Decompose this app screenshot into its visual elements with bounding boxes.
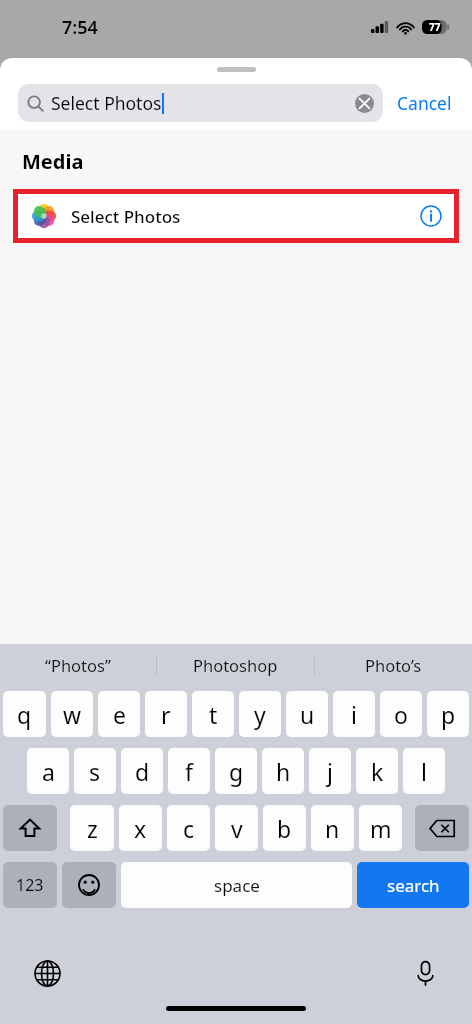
button[interactable]: n xyxy=(311,805,354,851)
staticText: b xyxy=(277,813,292,844)
staticText: c xyxy=(183,813,195,844)
button[interactable]: Clear text xyxy=(355,94,374,113)
button[interactable]: k xyxy=(356,748,398,794)
button[interactable]: Backspace xyxy=(415,805,469,851)
button[interactable]: g xyxy=(215,748,257,794)
staticText: f xyxy=(185,756,193,787)
button[interactable]: w xyxy=(51,691,93,737)
button[interactable]: h xyxy=(262,748,304,794)
staticText: Select Photos xyxy=(71,205,181,228)
staticText: e xyxy=(113,699,126,730)
staticText: Media xyxy=(22,148,84,175)
button[interactable]: v xyxy=(215,805,258,851)
button[interactable]: space xyxy=(121,862,352,908)
staticText: o xyxy=(394,699,408,730)
button[interactable]: Photo’s xyxy=(315,644,472,686)
staticText: a xyxy=(42,756,55,787)
button[interactable]: f xyxy=(168,748,210,794)
button[interactable]: Dictate xyxy=(408,956,442,990)
button[interactable]: z xyxy=(70,805,114,851)
button[interactable]: Select Photos xyxy=(18,194,454,238)
staticText: Select Photos xyxy=(51,91,162,115)
staticText: l xyxy=(421,756,427,787)
staticText: k xyxy=(371,756,384,787)
button[interactable]: Photoshop xyxy=(157,644,314,686)
button[interactable]: b xyxy=(263,805,306,851)
button[interactable]: s xyxy=(74,748,116,794)
staticText: r xyxy=(161,699,171,730)
staticText: p xyxy=(441,699,456,730)
staticText: t xyxy=(209,699,218,730)
button[interactable]: Change keyboard xyxy=(30,956,64,990)
staticText: z xyxy=(87,813,98,844)
staticText: Cancel xyxy=(397,91,452,115)
button[interactable]: Cancel xyxy=(383,85,454,121)
button[interactable]: x xyxy=(119,805,162,851)
button[interactable]: a xyxy=(27,748,69,794)
button[interactable]: r xyxy=(145,691,187,737)
staticText: m xyxy=(370,813,392,844)
staticText: y xyxy=(254,699,266,730)
staticText: j xyxy=(327,756,333,787)
button[interactable]: c xyxy=(167,805,210,851)
button[interactable]: t xyxy=(192,691,234,737)
button[interactable]: d xyxy=(121,748,163,794)
staticText: u xyxy=(300,699,315,730)
button[interactable]: Info xyxy=(420,205,442,227)
staticText: g xyxy=(229,756,244,787)
button[interactable]: y xyxy=(239,691,281,737)
button[interactable]: 123 xyxy=(3,862,57,908)
button[interactable]: u xyxy=(286,691,328,737)
staticText: space xyxy=(214,874,260,897)
button[interactable]: Select Photos xyxy=(18,84,383,122)
staticText: d xyxy=(135,756,150,787)
staticText: Photo’s xyxy=(365,654,422,676)
staticText: v xyxy=(231,813,243,844)
staticText: 7:54 xyxy=(62,15,98,40)
staticText: Photoshop xyxy=(193,654,278,676)
staticText: w xyxy=(63,699,82,730)
staticText: q xyxy=(17,699,32,730)
button[interactable]: o xyxy=(380,691,422,737)
staticText: search xyxy=(387,874,440,897)
button[interactable]: “Photos” xyxy=(0,644,156,686)
button[interactable]: l xyxy=(403,748,445,794)
button[interactable]: e xyxy=(98,691,140,737)
button[interactable]: i xyxy=(333,691,375,737)
staticText: n xyxy=(325,813,340,844)
button[interactable]: Shift xyxy=(3,805,57,851)
staticText: 123 xyxy=(16,874,44,896)
button[interactable]: Emoji xyxy=(62,862,116,908)
staticText: s xyxy=(89,756,101,787)
button[interactable]: m xyxy=(359,805,402,851)
staticText: i xyxy=(351,699,357,730)
staticText: x xyxy=(134,813,147,844)
staticText: 77 xyxy=(429,20,441,34)
button[interactable]: search xyxy=(357,862,469,908)
button[interactable]: q xyxy=(3,691,46,737)
button[interactable]: p xyxy=(427,691,469,737)
button[interactable]: j xyxy=(309,748,351,794)
staticText: “Photos” xyxy=(45,654,111,676)
staticText: h xyxy=(276,756,291,787)
